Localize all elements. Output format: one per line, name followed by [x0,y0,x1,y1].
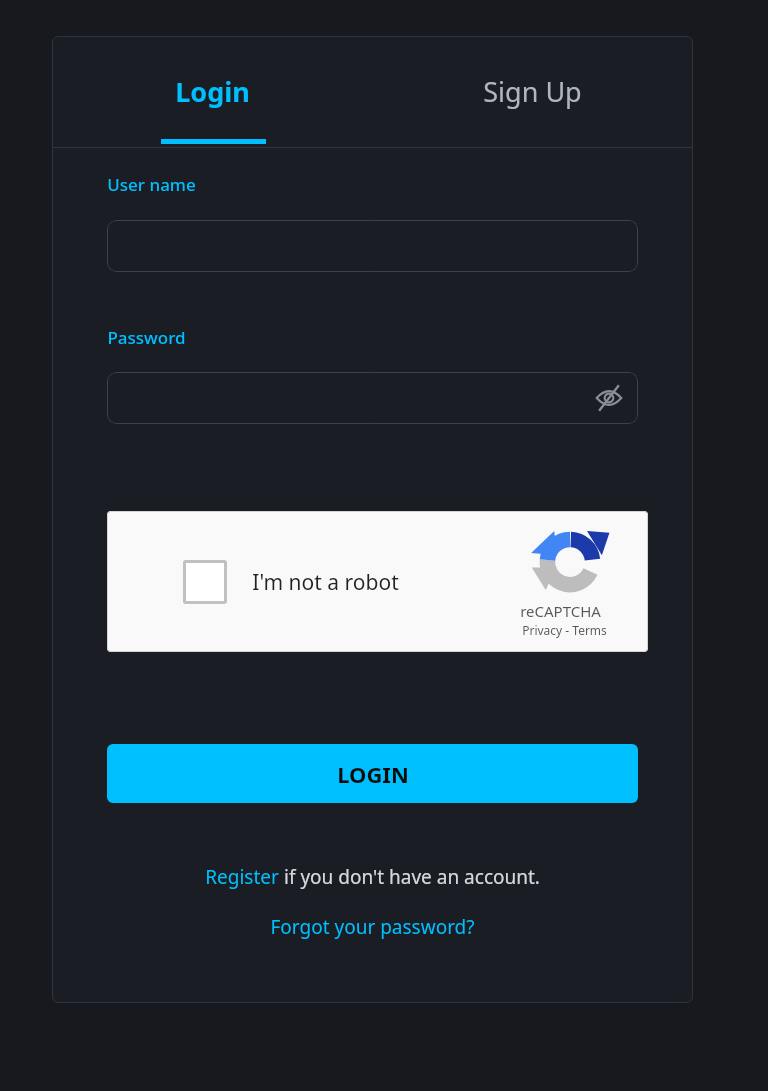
staticText: Password [107,326,186,349]
button[interactable]: Login [52,36,372,147]
staticText: LOGIN [337,759,409,789]
staticText: Forgot your password? [270,914,475,940]
staticText: Register [205,864,279,890]
button[interactable]: Show password [592,381,626,415]
button[interactable]: I'm not a robot [107,511,648,652]
staticText: I'm not a robot [252,568,399,597]
staticText: User name [107,173,196,196]
button[interactable]: Register [205,864,279,890]
staticText: Sign Up [483,73,582,110]
button[interactable]: Show password [107,372,638,424]
staticText: reCAPTCHA [520,601,601,621]
button[interactable] [107,220,638,272]
staticText: if you don't have an account. [279,864,540,890]
staticText: Privacy - Terms [522,622,607,638]
staticText: Login [175,73,250,110]
button[interactable]: LOGIN [107,744,638,803]
button[interactable]: Sign Up [372,36,693,147]
button[interactable]: Forgot your password? [270,914,475,940]
